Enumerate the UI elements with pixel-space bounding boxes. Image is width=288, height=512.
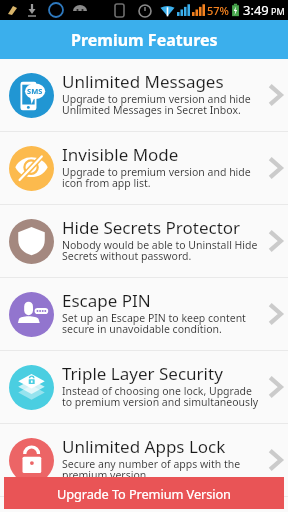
staticText: to premium version and simultaneously: [62, 395, 259, 409]
button[interactable]: Upgrade To Premium Version: [4, 477, 284, 509]
staticText: icon from app list.: [62, 176, 151, 190]
staticText: Upgrade To Premium Version: [57, 485, 231, 502]
staticText: Unlimited Messages in Secret Inbox.: [62, 103, 241, 117]
staticText: Secure any number of apps with the: [62, 457, 241, 471]
button[interactable]: Open Invisible Mode: [262, 144, 288, 192]
button[interactable]: Triple Layer Security: [0, 351, 288, 423]
staticText: secure in unavoidable condition.: [62, 322, 222, 336]
button[interactable]: SMS: [0, 59, 288, 131]
staticText: Invisible Mode: [62, 143, 179, 166]
button[interactable]: Escape PIN: [0, 278, 288, 350]
staticText: Instead of choosing one lock, Upgrade: [62, 384, 252, 398]
staticText: Set up an Escape PIN to keep content: [62, 311, 246, 325]
staticText: 3:49: [243, 1, 269, 19]
staticText: PM: [271, 5, 285, 17]
staticText: Secrets without password.: [62, 249, 192, 263]
button[interactable]: Invisible Mode: [0, 132, 288, 204]
button[interactable]: Open Unlimited Apps Lock: [262, 436, 288, 484]
staticText: Premium Features: [71, 29, 218, 51]
button[interactable]: Unlimited Apps Lock: [0, 424, 288, 496]
staticText: SMS: [27, 86, 43, 96]
staticText: premium version.: [62, 468, 150, 482]
staticText: Triple Layer Security: [62, 362, 223, 385]
staticText: Upgrade to premium version and hide: [62, 92, 251, 106]
staticText: Escape PIN: [62, 289, 151, 312]
button[interactable]: Open Escape PIN: [262, 290, 288, 338]
button[interactable]: Open Hide Secrets Protector: [262, 217, 288, 265]
button[interactable]: Hide Secrets Protector: [0, 205, 288, 277]
staticText: Hide Secrets Protector: [62, 216, 241, 239]
button[interactable]: Open Triple Layer Security: [262, 363, 288, 411]
staticText: Upgrade to premium version and hide: [62, 165, 251, 179]
staticText: 57%: [207, 3, 229, 18]
staticText: Nobody would be able to Uninstall Hide: [62, 238, 258, 252]
staticText: Unlimited Messages: [62, 70, 224, 93]
staticText: Unlimited Apps Lock: [62, 435, 226, 458]
button[interactable]: Open Unlimited Messages: [262, 71, 288, 119]
